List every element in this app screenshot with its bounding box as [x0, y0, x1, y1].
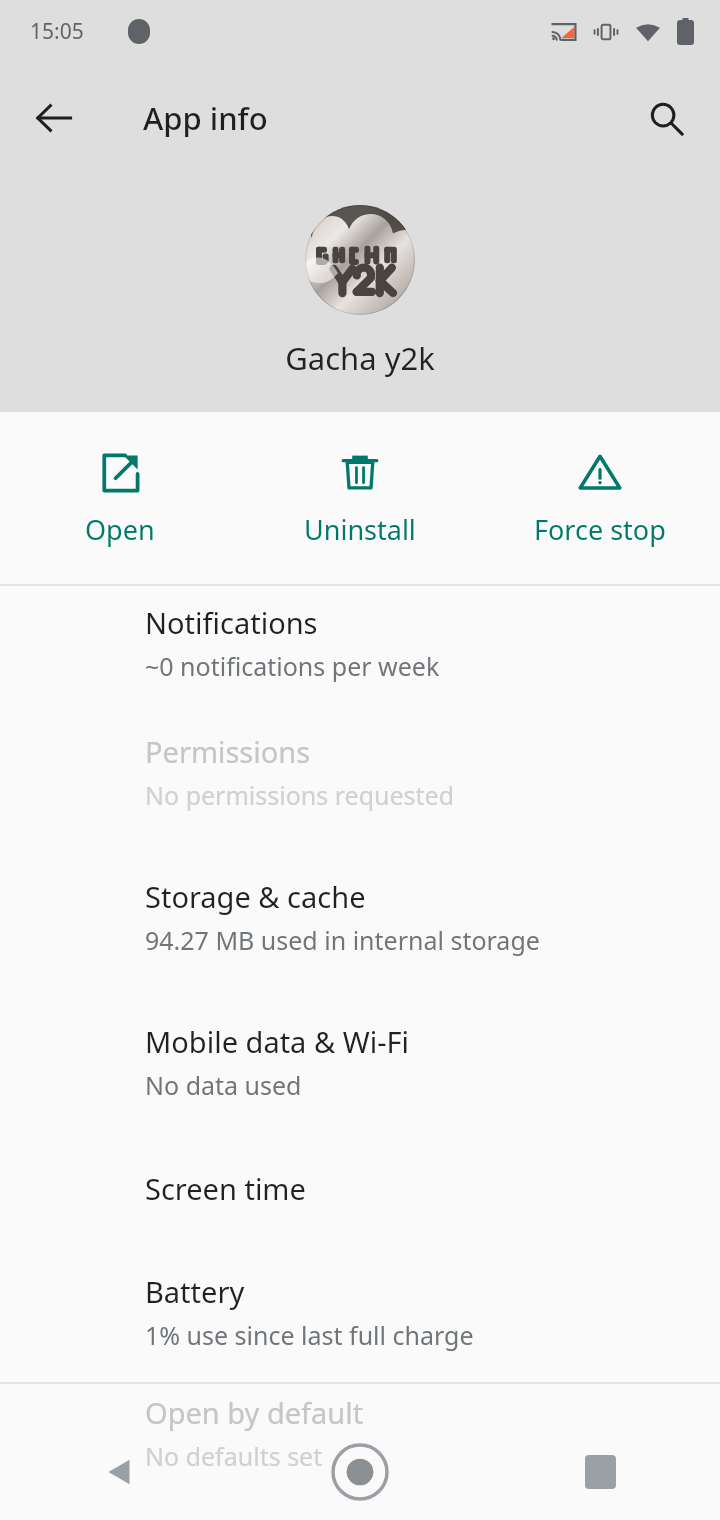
staticText: ~0 notifications per week: [145, 649, 440, 683]
staticText: 94.27 MB used in internal storage: [145, 923, 540, 957]
staticText: Battery: [145, 1272, 245, 1311]
button[interactable]: Back: [14, 78, 94, 158]
button[interactable]: Open by default: [0, 1384, 720, 1482]
staticText: No permissions requested: [145, 778, 455, 812]
button[interactable]: Recents: [480, 1424, 720, 1520]
button[interactable]: Back: [0, 1424, 240, 1520]
staticText: No defaults set: [145, 1439, 323, 1473]
staticText: Notifications: [145, 603, 318, 642]
staticText: Gacha y2k: [285, 337, 435, 379]
staticText: 1% use since last full charge: [145, 1318, 474, 1352]
button[interactable]: Battery: [0, 1242, 720, 1382]
staticText: Open by default: [145, 1393, 364, 1432]
button[interactable]: Storage & cache: [0, 844, 720, 989]
staticText: Permissions: [145, 732, 311, 771]
staticText: Open: [85, 511, 155, 548]
button[interactable]: Home: [240, 1424, 480, 1520]
button[interactable]: Open: [0, 439, 240, 560]
button[interactable]: Notifications: [0, 586, 720, 699]
staticText: App info: [143, 97, 268, 139]
button[interactable]: Force stop: [480, 439, 720, 560]
button[interactable]: Mobile data & Wi-Fi: [0, 989, 720, 1134]
staticText: Screen time: [145, 1169, 306, 1208]
button[interactable]: Uninstall: [240, 439, 480, 560]
staticText: Mobile data & Wi-Fi: [145, 1022, 410, 1061]
button[interactable]: Search: [626, 78, 706, 158]
staticText: No data used: [145, 1068, 302, 1102]
staticText: Storage & cache: [145, 877, 366, 916]
button[interactable]: Permissions: [0, 699, 720, 844]
staticText: 15:05: [30, 17, 84, 46]
staticText: Force stop: [534, 511, 666, 548]
staticText: Uninstall: [304, 511, 416, 548]
button[interactable]: Screen time: [0, 1134, 720, 1242]
